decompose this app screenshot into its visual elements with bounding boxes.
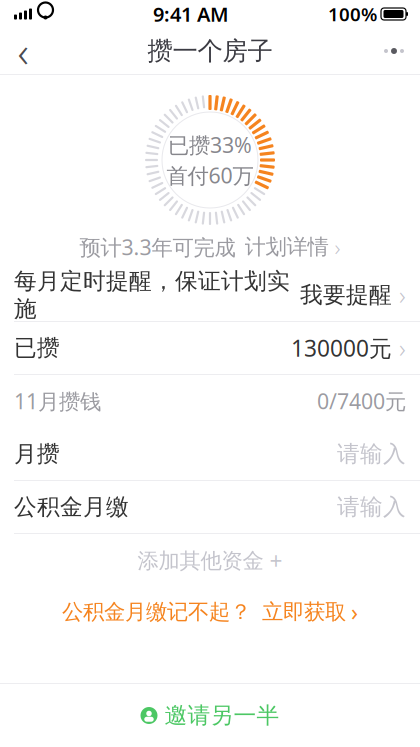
- staticText: 立即获取: [262, 599, 346, 625]
- staticText: 预计3.3年可完成: [79, 233, 235, 261]
- staticText: 公积金月缴: [14, 493, 129, 521]
- staticText: 邀请另一半: [164, 702, 279, 729]
- staticText: 每月定时提醒，保证计划实施: [14, 267, 290, 323]
- staticText: 100%: [328, 2, 377, 26]
- button[interactable]: 11月攒钱: [0, 375, 420, 428]
- staticText: 已攒: [14, 334, 60, 362]
- button[interactable]: 公积金月缴记不起？: [0, 588, 420, 636]
- staticText: ‹: [17, 23, 28, 79]
- button[interactable]: 月攒: [0, 428, 420, 481]
- staticText: ›: [351, 597, 358, 627]
- staticText: 0/7400元: [317, 387, 406, 415]
- button[interactable]: 每月定时提醒，保证计划实施: [0, 269, 420, 322]
- staticText: 请输入: [337, 493, 406, 521]
- staticText: 首付60万: [166, 161, 253, 189]
- staticText: 我要提醒: [300, 281, 392, 309]
- button[interactable]: 预计3.3年可完成: [79, 225, 340, 269]
- staticText: 月攒: [14, 440, 60, 468]
- staticText: 130000元: [291, 333, 392, 363]
- staticText: ›: [399, 278, 406, 312]
- staticText: ›: [399, 331, 406, 365]
- staticText: 已攒33%: [168, 131, 252, 159]
- button[interactable]: 已攒: [0, 322, 420, 375]
- staticText: 攒一个房子: [147, 35, 272, 66]
- staticText: 公积金月缴记不起？: [62, 599, 251, 625]
- staticText: 请输入: [337, 440, 406, 468]
- staticText: 计划详情: [244, 234, 328, 260]
- staticText: 添加其他资金: [137, 548, 263, 574]
- button[interactable]: 添加其他资金: [0, 534, 420, 588]
- button[interactable]: More options: [368, 28, 420, 74]
- button[interactable]: 公积金月缴: [0, 481, 420, 534]
- staticText: 11月攒钱: [14, 387, 101, 415]
- button[interactable]: 邀请另一半: [0, 684, 420, 747]
- staticText: +: [269, 546, 282, 576]
- staticText: 9:41 AM: [153, 1, 229, 27]
- button[interactable]: Back: [0, 28, 46, 74]
- staticText: ›: [334, 232, 340, 262]
